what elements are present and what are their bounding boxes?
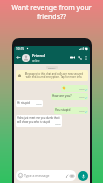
button[interactable]: Video call [69, 54, 76, 61]
staticText: Friend [32, 53, 45, 59]
button[interactable]: Type a message [18, 170, 74, 181]
staticText: Haha just meet me you dumb that i will s… [17, 116, 61, 124]
staticText: 10:15 [79, 110, 85, 113]
staticText: 10:15 [79, 96, 85, 99]
staticText: 10:15 [79, 88, 85, 91]
staticText: Hi stupid [17, 101, 31, 105]
button[interactable]: More options [83, 55, 88, 60]
staticText: 10:15 [36, 103, 42, 106]
staticText: Type a message [24, 173, 50, 178]
staticText: TODAY [48, 66, 56, 69]
staticText: 👋 [62, 86, 66, 90]
staticText: Want revenge from your friends?? [11, 3, 92, 21]
button[interactable]: Haha just meet me you dumb that i will s… [17, 116, 61, 126]
staticText: Messages to this chat and calls are now … [22, 72, 86, 78]
button[interactable]: Voice message [78, 171, 88, 181]
button[interactable]: Back [15, 54, 22, 61]
button[interactable]: How are you? [52, 94, 87, 99]
button[interactable]: Call [76, 54, 83, 61]
staticText: How are you? [52, 94, 72, 98]
button[interactable]: Hi stupid [17, 101, 42, 106]
staticText: 10:15 [55, 123, 61, 126]
staticText: online [32, 59, 40, 63]
staticText: You stupid [55, 108, 71, 112]
button[interactable]: You stupid [55, 108, 87, 113]
button[interactable]: 👋 [62, 86, 87, 91]
staticText: 10:15 [16, 47, 25, 51]
